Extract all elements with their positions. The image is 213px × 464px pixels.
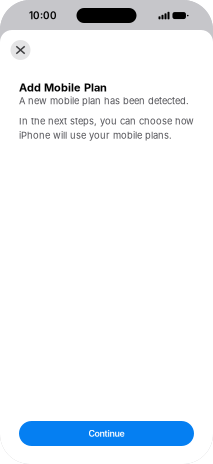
staticText: Add Mobile Plan: [19, 81, 107, 94]
staticText: In the next steps, you can choose how iP…: [19, 115, 194, 141]
staticText: A new mobile plan has been detected.: [19, 95, 189, 106]
button[interactable]: Continue: [19, 421, 194, 446]
staticText: Continue: [88, 428, 124, 439]
staticText: 10:00: [29, 10, 57, 21]
button[interactable]: Close: [10, 40, 30, 60]
